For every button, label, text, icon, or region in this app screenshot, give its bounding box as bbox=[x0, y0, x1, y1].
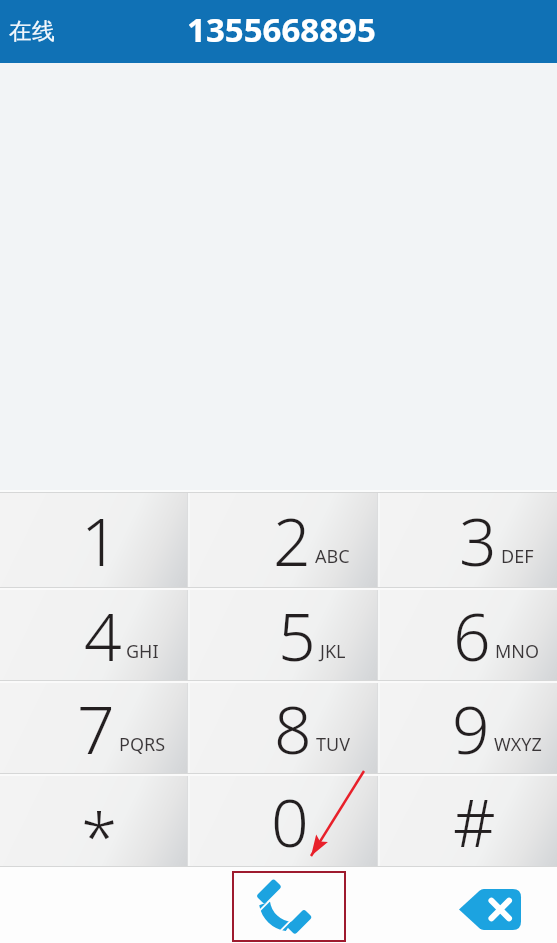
staticText: ABC bbox=[315, 544, 350, 569]
staticText: MNO bbox=[495, 639, 540, 664]
staticText: 4 bbox=[84, 590, 122, 680]
button[interactable]: 5 bbox=[190, 590, 377, 680]
staticText: 2 bbox=[273, 495, 311, 585]
button[interactable]: Call bbox=[233, 876, 345, 943]
button[interactable]: 0 bbox=[190, 776, 377, 866]
button[interactable]: 1 bbox=[0, 493, 187, 587]
staticText: 在线 bbox=[9, 17, 55, 46]
staticText: WXYZ bbox=[494, 732, 542, 757]
staticText: PQRS bbox=[119, 732, 166, 757]
button[interactable]: 3 bbox=[380, 493, 557, 587]
staticText: DEF bbox=[501, 544, 534, 569]
staticText: 3 bbox=[459, 495, 497, 585]
staticText: 0 bbox=[271, 776, 309, 866]
button[interactable]: Delete bbox=[448, 881, 532, 937]
staticText: 9 bbox=[452, 683, 490, 773]
staticText: TUV bbox=[316, 732, 350, 757]
button[interactable]: # bbox=[380, 776, 557, 866]
staticText: 1355668895 bbox=[187, 7, 376, 52]
staticText: 7 bbox=[77, 683, 115, 773]
staticText: 1 bbox=[81, 495, 119, 585]
staticText: GHI bbox=[126, 639, 159, 664]
button[interactable]: 7 bbox=[0, 683, 187, 773]
staticText: * bbox=[81, 790, 118, 880]
staticText: 8 bbox=[274, 683, 312, 773]
button[interactable]: * bbox=[0, 776, 187, 866]
button[interactable]: 4 bbox=[0, 590, 187, 680]
staticText: 6 bbox=[453, 590, 491, 680]
button[interactable]: 6 bbox=[380, 590, 557, 680]
button[interactable]: 8 bbox=[190, 683, 377, 773]
staticText: 5 bbox=[278, 590, 316, 680]
staticText: JKL bbox=[320, 639, 346, 664]
button[interactable]: 2 bbox=[190, 493, 377, 587]
button[interactable]: 9 bbox=[380, 683, 557, 773]
staticText: # bbox=[453, 776, 496, 866]
